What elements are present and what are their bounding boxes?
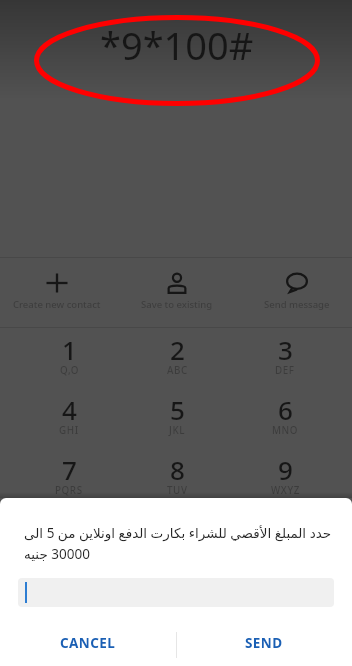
button[interactable]: [18, 578, 334, 607]
button[interactable]: 1: [15, 326, 123, 386]
staticText: ABC: [167, 364, 188, 377]
staticText: WXYZ: [271, 484, 300, 497]
staticText: 5: [170, 392, 185, 427]
button[interactable]: 8: [123, 446, 231, 506]
staticText: 9: [278, 452, 293, 487]
button[interactable]: 2: [123, 326, 231, 386]
button[interactable]: 4: [15, 386, 123, 446]
button[interactable]: Create new contact: [0, 258, 115, 327]
staticText: DEF: [275, 364, 295, 377]
button[interactable]: CANCEL: [0, 620, 176, 666]
staticText: TUV: [167, 484, 188, 497]
button[interactable]: 6: [231, 386, 339, 446]
other: Send message: [286, 272, 308, 294]
staticText: CANCEL: [60, 634, 116, 652]
button[interactable]: 5: [123, 386, 231, 446]
staticText: Send message: [264, 298, 330, 311]
button[interactable]: 7: [15, 446, 123, 506]
button[interactable]: 3: [231, 326, 339, 386]
button[interactable]: SEND: [176, 620, 352, 666]
staticText: 6: [278, 392, 293, 427]
staticText: Create new contact: [13, 298, 101, 311]
other: Save to existing: [166, 272, 188, 294]
staticText: 7: [62, 452, 77, 487]
button[interactable]: Save to existing: [119, 258, 235, 327]
button[interactable]: 9: [231, 446, 339, 506]
staticText: SEND: [245, 634, 283, 652]
staticText: 3: [278, 332, 293, 367]
staticText: 1: [62, 332, 77, 367]
staticText: JKL: [169, 424, 186, 437]
staticText: PQRS: [55, 484, 83, 497]
staticText: Save to existing: [141, 298, 213, 311]
staticText: حدد المبلغ الأقصي للشراء بكارت الدفع اون…: [24, 524, 334, 563]
staticText: 4: [62, 392, 77, 427]
staticText: MNO: [272, 424, 299, 437]
staticText: *9*100#: [100, 19, 254, 71]
staticText: 2: [170, 332, 185, 367]
button[interactable]: Send message: [239, 258, 352, 327]
staticText: 8: [170, 452, 185, 487]
staticText: GHI: [59, 424, 79, 437]
staticText: Q,O: [60, 364, 79, 377]
other: Create new contact: [46, 272, 68, 294]
